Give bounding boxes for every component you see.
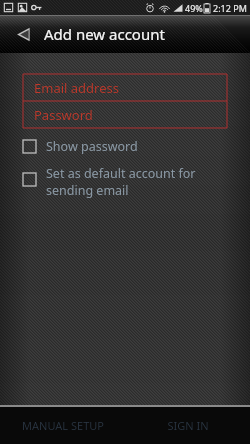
button[interactable]: Email address	[23, 74, 227, 101]
button[interactable]: Password	[23, 101, 227, 128]
button[interactable]: Show password	[23, 138, 234, 155]
staticText: 2:12 PM	[213, 2, 247, 14]
button[interactable]: Set as default account for sending email	[23, 165, 234, 199]
staticText: Set as default account for sending email	[46, 165, 196, 199]
staticText: SIGN IN	[167, 418, 209, 433]
button[interactable]: SIGN IN	[125, 407, 250, 444]
staticText: 49%	[185, 2, 203, 14]
staticText: MANUAL SETUP	[22, 418, 104, 433]
staticText: Add new account	[44, 24, 165, 44]
staticText: Password	[34, 106, 93, 124]
button[interactable]: Navigate up	[9, 21, 35, 47]
button[interactable]: MANUAL SETUP	[0, 407, 125, 444]
staticText: Email address	[34, 79, 119, 97]
staticText: Show password	[46, 138, 138, 155]
